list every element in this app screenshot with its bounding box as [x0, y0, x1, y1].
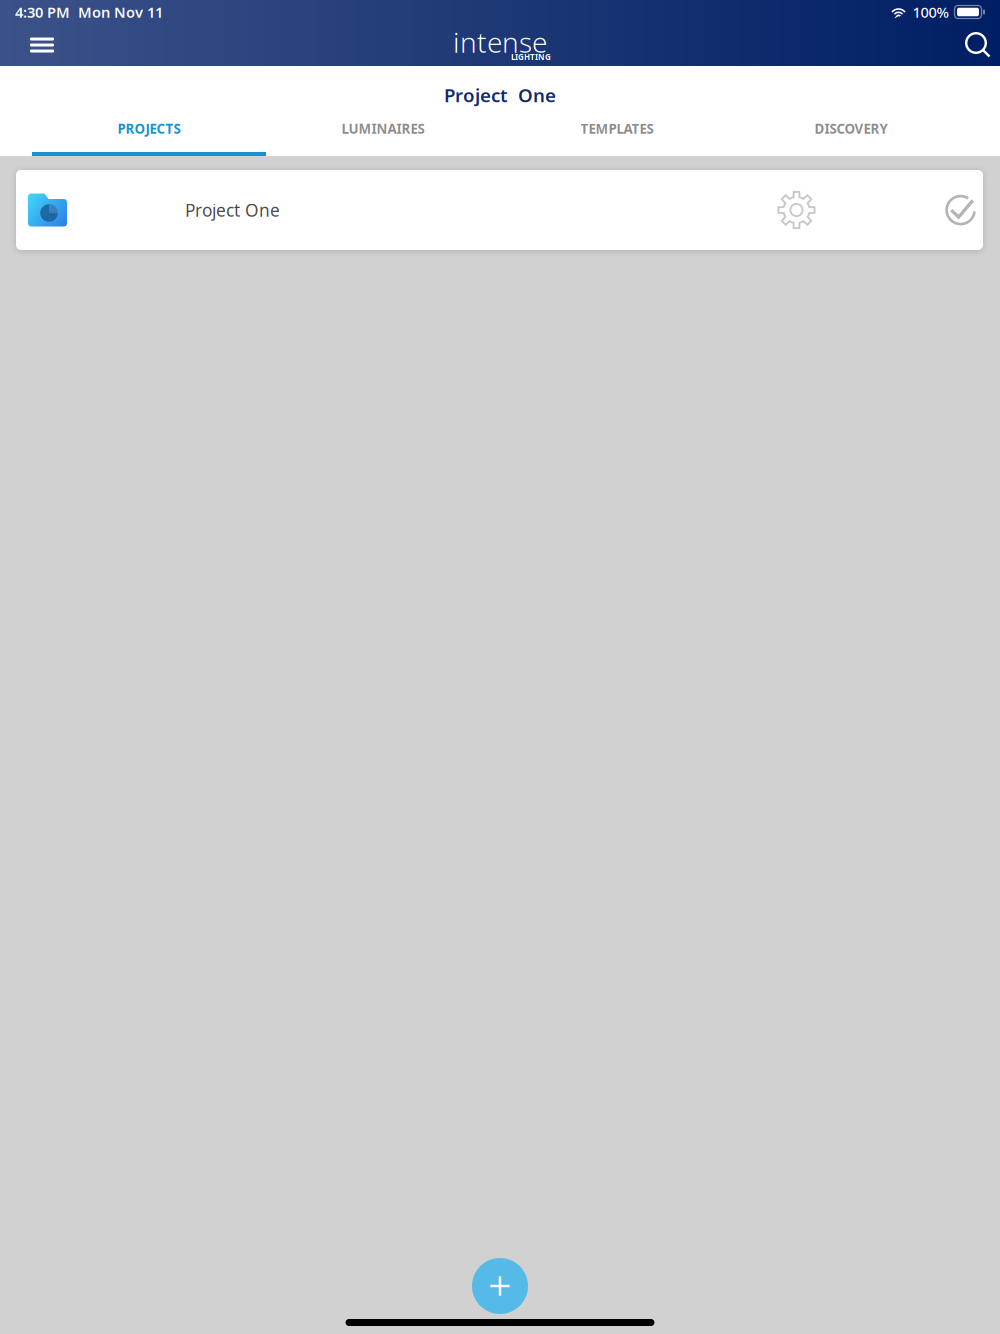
button[interactable]: LUMINAIRES: [266, 116, 500, 156]
staticText: intense: [453, 23, 547, 61]
staticText: LUMINAIRES: [341, 120, 424, 137]
staticText: Project One: [185, 198, 280, 221]
staticText: TEMPLATES: [580, 120, 653, 137]
button[interactable]: DISCOVERY: [734, 116, 968, 156]
button[interactable]: PROJECTS: [32, 116, 266, 156]
button[interactable]: Search: [964, 31, 992, 59]
button[interactable]: Project One: [16, 170, 983, 250]
button[interactable]: TEMPLATES: [500, 116, 734, 156]
staticText: Project One: [444, 83, 556, 107]
button[interactable]: Select project: [945, 193, 978, 226]
button[interactable]: Project settings: [777, 190, 816, 229]
staticText: DISCOVERY: [814, 120, 887, 137]
staticText: 4:30 PM: [15, 2, 70, 22]
button[interactable]: Menu: [20, 23, 64, 67]
staticText: PROJECTS: [117, 120, 180, 137]
staticText: 100%: [912, 2, 948, 22]
button[interactable]: Add project: [472, 1258, 528, 1314]
staticText: Mon Nov 11: [78, 2, 163, 22]
staticText: LIGHTING: [511, 52, 551, 62]
